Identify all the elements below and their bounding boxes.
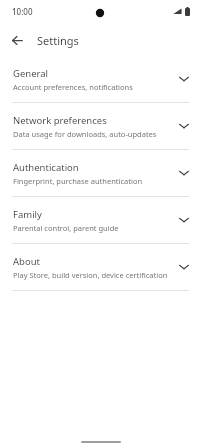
button[interactable]: Authentication <box>0 150 201 196</box>
button[interactable]: Back <box>7 30 27 50</box>
staticText: Account preferences, notifications <box>13 82 133 92</box>
staticText: Parental control, parent guide <box>13 223 119 233</box>
button[interactable]: Family <box>0 197 201 243</box>
button[interactable]: General <box>0 56 201 102</box>
staticText: Settings <box>37 33 79 48</box>
staticText: Fingerprint, purchase authentication <box>13 176 143 186</box>
staticText: About <box>13 255 40 268</box>
staticText: Authentication <box>13 161 79 174</box>
staticText: General <box>13 67 49 80</box>
staticText: Network preferences <box>13 114 107 127</box>
button[interactable]: About <box>0 244 201 290</box>
button[interactable]: Network preferences <box>0 103 201 149</box>
staticText: Play Store, build version, device certif… <box>13 270 168 280</box>
staticText: 10:00 <box>12 6 33 17</box>
staticText: Family <box>13 208 42 221</box>
staticText: Data usage for downloads, auto-updates <box>13 129 157 139</box>
